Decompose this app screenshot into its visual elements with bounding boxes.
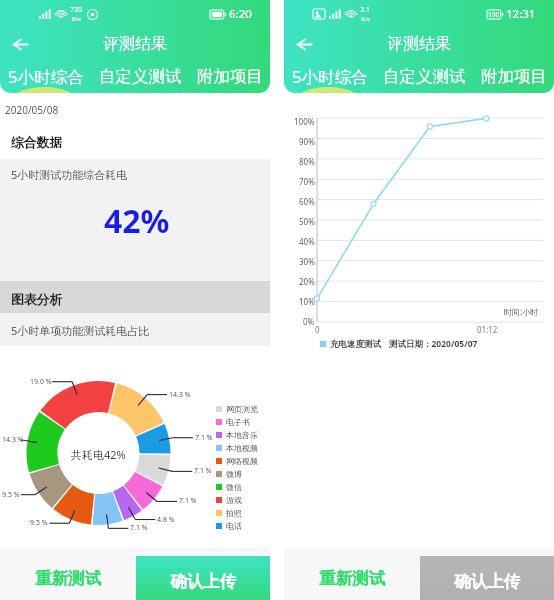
staticText: 充电速度测试: [330, 339, 381, 350]
staticText: 720: [70, 5, 83, 15]
staticText: 自定义测试: [383, 66, 466, 87]
staticText: 80%: [299, 156, 315, 167]
staticText: 01:12: [477, 324, 498, 335]
staticText: 7.1 %: [130, 523, 148, 533]
button[interactable]: 确认上传: [136, 556, 270, 600]
staticText: 6:20: [229, 6, 252, 22]
staticText: 测试日期：2020/05/07: [389, 338, 478, 350]
staticText: 50%: [299, 216, 315, 227]
staticText: 40%: [299, 236, 315, 247]
staticText: 确认上传: [170, 571, 236, 592]
staticText: 10%: [299, 296, 315, 307]
staticText: 12:31: [506, 6, 536, 22]
staticText: 网络视频: [226, 456, 258, 466]
staticText: 图表分析: [11, 292, 63, 308]
staticText: 60%: [299, 196, 315, 207]
staticText: 重新测试: [35, 568, 101, 589]
staticText: 评测结果: [387, 34, 451, 54]
staticText: 9.5 %: [2, 490, 20, 500]
button[interactable]: Back: [287, 28, 319, 60]
staticText: 网页浏览: [226, 404, 258, 414]
staticText: 70%: [299, 176, 315, 187]
staticText: B/s: [72, 15, 82, 23]
staticText: 附加项目: [197, 66, 263, 87]
staticText: 微博: [226, 469, 242, 479]
button[interactable]: 5小时综合: [290, 61, 370, 92]
staticText: 5小时测试功能综合耗电: [11, 167, 128, 182]
staticText: 电子书: [226, 417, 250, 427]
staticText: 100: [488, 10, 500, 19]
button[interactable]: 重新测试: [0, 548, 136, 600]
staticText: 7.1 %: [179, 496, 197, 506]
staticText: 30%: [299, 256, 315, 267]
staticText: 评测结果: [103, 34, 167, 54]
button[interactable]: 重新测试: [284, 548, 420, 600]
staticText: 共耗电42%: [71, 447, 126, 462]
staticText: 7.1 %: [194, 466, 212, 476]
staticText: 附加项目: [481, 66, 547, 87]
staticText: 电话: [226, 521, 242, 531]
staticText: 20%: [299, 276, 315, 287]
staticText: 本地视频: [226, 443, 258, 453]
staticText: 综合数据: [11, 135, 63, 151]
staticText: 14.3 %: [169, 390, 191, 400]
staticText: 3.1: [360, 5, 370, 15]
staticText: 拍照: [226, 508, 242, 518]
staticText: 微信: [226, 482, 242, 492]
staticText: 19.0 %: [30, 377, 52, 387]
staticText: 100%: [294, 116, 315, 127]
staticText: 5小时综合: [8, 65, 84, 88]
staticText: 时间:小时: [504, 306, 539, 317]
staticText: 重新测试: [319, 568, 385, 589]
staticText: 5小时综合: [292, 65, 368, 88]
button[interactable]: Back: [3, 28, 35, 60]
button[interactable]: 确认上传: [420, 556, 554, 600]
staticText: 0%: [303, 316, 315, 327]
staticText: 5小时单项功能测试耗电占比: [11, 323, 150, 338]
staticText: 9.5 %: [30, 518, 48, 528]
staticText: 确认上传: [454, 571, 520, 592]
staticText: K/s: [361, 15, 370, 23]
staticText: 14.3 %: [2, 435, 24, 445]
staticText: 自定义测试: [99, 66, 182, 87]
button[interactable]: 自定义测试: [97, 62, 184, 91]
staticText: 4.8 %: [157, 515, 175, 525]
staticText: 本地音乐: [226, 430, 258, 440]
staticText: 7.1 %: [195, 433, 213, 443]
staticText: 2020/05/08: [5, 103, 59, 117]
button[interactable]: 附加项目: [479, 62, 549, 91]
staticText: 游戏: [226, 495, 242, 505]
staticText: 90%: [299, 136, 315, 147]
button[interactable]: 附加项目: [195, 62, 265, 91]
staticText: 0: [315, 324, 320, 335]
button[interactable]: 5小时综合: [6, 61, 86, 92]
button[interactable]: 自定义测试: [381, 62, 468, 91]
staticText: 42%: [104, 199, 170, 243]
